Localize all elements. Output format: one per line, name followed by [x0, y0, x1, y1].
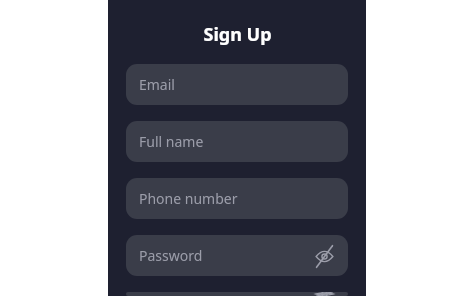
- staticText: Full name: [139, 132, 204, 151]
- button[interactable]: Phone number: [126, 178, 348, 219]
- button[interactable]: Email: [126, 64, 348, 105]
- staticText: Email: [139, 75, 175, 94]
- button[interactable]: Toggle password visibility: [312, 244, 336, 268]
- staticText: Password: [139, 246, 203, 265]
- button[interactable]: Confirm password: [126, 292, 348, 296]
- button[interactable]: Password: [126, 235, 348, 276]
- staticText: Sign Up: [203, 22, 272, 47]
- staticText: Phone number: [139, 189, 238, 208]
- button[interactable]: Full name: [126, 121, 348, 162]
- button[interactable]: Toggle password visibility: [312, 292, 336, 296]
